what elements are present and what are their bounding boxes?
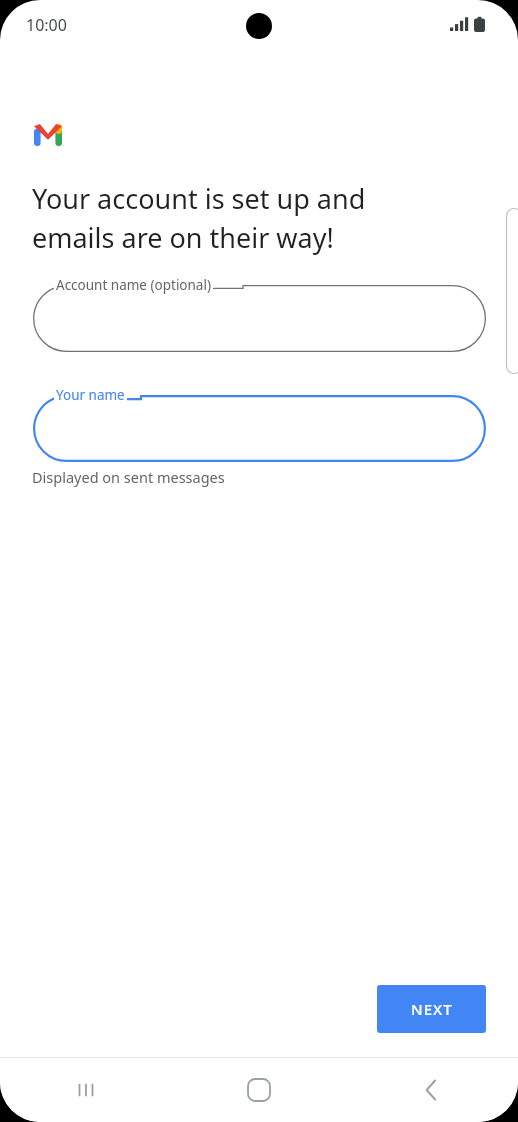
staticText: Displayed on sent messages bbox=[32, 467, 225, 487]
staticText: NEXT bbox=[411, 999, 453, 1019]
staticText: 10:00 bbox=[26, 14, 67, 36]
button[interactable]: Back bbox=[345, 1057, 518, 1122]
staticText: Your name bbox=[56, 386, 125, 404]
button[interactable]: NEXT bbox=[377, 985, 486, 1033]
staticText: Account name (optional) bbox=[56, 276, 211, 294]
staticText: Your account is set up and emails are on… bbox=[32, 180, 472, 256]
button[interactable]: Home bbox=[172, 1057, 345, 1122]
button[interactable]: Recent apps bbox=[0, 1057, 172, 1122]
button[interactable] bbox=[33, 395, 486, 462]
button[interactable] bbox=[33, 285, 486, 352]
